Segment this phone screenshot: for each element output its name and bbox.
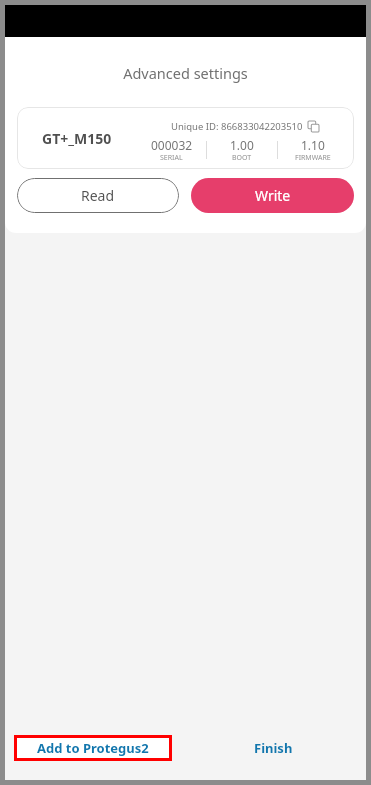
staticText: Add to Protegus2 <box>37 739 149 757</box>
button[interactable]: Add to Protegus2 <box>17 738 169 758</box>
staticText: 1.00 <box>230 137 254 153</box>
staticText: FIRMWARE <box>295 153 331 163</box>
staticText: SERIAL <box>160 153 183 163</box>
staticText: Unique ID: 866833042203510 <box>171 120 303 133</box>
button[interactable]: Copy unique ID <box>306 119 320 133</box>
staticText: BOOT <box>232 153 252 163</box>
button[interactable]: Finish <box>246 731 301 765</box>
staticText: GT+_M150 <box>42 129 112 148</box>
staticText: Finish <box>254 739 293 757</box>
staticText: Advanced settings <box>5 63 366 83</box>
staticText: 1.10 <box>301 137 325 153</box>
staticText: Write <box>255 186 291 205</box>
button[interactable]: Write <box>191 178 354 213</box>
button[interactable]: Read <box>17 178 179 213</box>
staticText: Read <box>81 186 115 205</box>
staticText: 000032 <box>151 137 193 153</box>
